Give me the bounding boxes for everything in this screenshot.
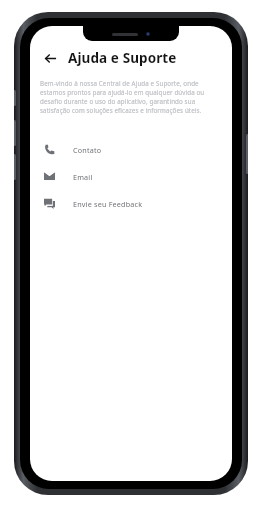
button[interactable]: Email xyxy=(30,163,232,190)
button[interactable]: Voltar xyxy=(39,47,61,69)
staticText: Email xyxy=(73,172,93,182)
staticText: Ajuda e Suporte xyxy=(68,49,177,67)
button[interactable]: Envie seu Feedback xyxy=(30,190,232,217)
staticText: Envie seu Feedback xyxy=(73,199,143,209)
staticText: Contato xyxy=(73,145,102,155)
staticText: Bem-vindo à nossa Central de Ajuda e Sup… xyxy=(40,79,220,115)
button[interactable]: Contato xyxy=(30,136,232,163)
